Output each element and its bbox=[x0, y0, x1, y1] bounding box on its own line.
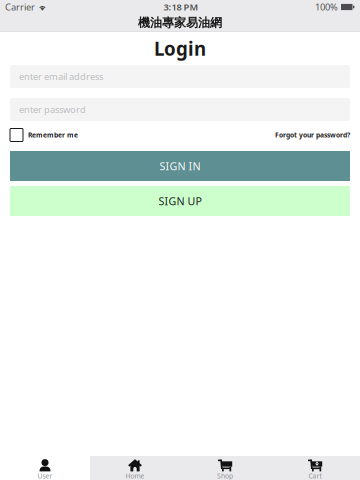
staticText: Login bbox=[154, 36, 206, 61]
staticText: Remember me bbox=[28, 131, 78, 139]
staticText: Forgot your password? bbox=[275, 131, 350, 139]
staticText: Cart bbox=[308, 472, 321, 480]
staticText: enter password bbox=[19, 103, 86, 116]
staticText: User bbox=[37, 472, 52, 480]
staticText: Carrier bbox=[5, 1, 35, 13]
staticText: 3:18 PM bbox=[163, 1, 198, 13]
button[interactable]: Forgot your password? bbox=[275, 131, 350, 139]
staticText: 100% bbox=[315, 1, 338, 13]
button[interactable]: Home bbox=[90, 456, 180, 480]
staticText: Shop bbox=[217, 472, 233, 480]
button[interactable]: SIGN IN bbox=[10, 151, 350, 181]
staticText: enter email address bbox=[19, 70, 103, 83]
button[interactable]: SIGN UP bbox=[10, 186, 350, 216]
button[interactable]: Cart bbox=[270, 456, 360, 480]
button[interactable]: User bbox=[0, 456, 90, 480]
staticText: SIGN UP bbox=[158, 194, 201, 208]
button[interactable]: Remember me bbox=[10, 128, 78, 141]
staticText: SIGN IN bbox=[159, 159, 200, 173]
staticText: Home bbox=[125, 472, 144, 480]
staticText: 機油專家易油網 bbox=[138, 15, 222, 30]
button[interactable]: Shop bbox=[180, 456, 270, 480]
